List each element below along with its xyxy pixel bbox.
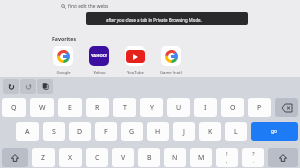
button[interactable]: H (147, 122, 169, 141)
button[interactable]: N (164, 148, 186, 167)
staticText: YouTube (127, 70, 144, 76)
staticText: Favorites (52, 35, 76, 42)
staticText: B (147, 153, 152, 163)
button[interactable]: L (225, 122, 247, 141)
staticText: go (271, 128, 278, 135)
staticText: Yahoo (93, 70, 106, 76)
staticText: ! (226, 150, 228, 158)
button[interactable]: O (221, 98, 244, 117)
button[interactable]: Undo (3, 79, 19, 94)
staticText: I (204, 103, 207, 113)
button[interactable]: Paste (37, 79, 53, 94)
button[interactable]: I (194, 98, 217, 117)
button[interactable]: go (251, 122, 298, 141)
staticText: S (52, 127, 56, 137)
staticText: N (172, 153, 178, 163)
staticText: K (208, 127, 213, 137)
button[interactable]: Q (2, 98, 26, 117)
staticText: R (95, 103, 100, 113)
staticText: X (68, 153, 73, 163)
staticText: V (121, 153, 126, 163)
staticText: Z (41, 153, 46, 163)
staticText: L (234, 127, 238, 137)
button[interactable]: X (59, 148, 82, 167)
staticText: YAHOO! (91, 53, 108, 59)
staticText: D (77, 127, 83, 137)
button[interactable]: U (167, 98, 190, 117)
button[interactable]: ? (242, 148, 264, 167)
button[interactable]: YouTube (125, 46, 145, 66)
staticText: H (155, 127, 161, 137)
staticText: U (176, 103, 182, 113)
button[interactable]: S (43, 122, 65, 141)
staticText: ? (252, 150, 255, 158)
button[interactable]: Shift (268, 148, 298, 167)
button[interactable]: Redo (20, 79, 36, 94)
staticText: . (253, 158, 255, 165)
staticText: C (95, 153, 100, 163)
staticText: O (230, 103, 236, 113)
button[interactable]: G (121, 122, 143, 141)
staticText: E (68, 103, 72, 113)
button[interactable]: Google (53, 46, 73, 66)
button[interactable]: Y (140, 98, 163, 117)
button[interactable]: D (69, 122, 91, 141)
button[interactable]: M (190, 148, 212, 167)
button[interactable]: F (95, 122, 117, 141)
staticText: after you close a tab in Private Browsin… (106, 17, 202, 23)
button[interactable]: K (199, 122, 221, 141)
button[interactable]: J (173, 122, 195, 141)
button[interactable]: after you close a tab in Private Browsin… (86, 12, 248, 25)
button[interactable]: R (86, 98, 109, 117)
staticText: J (183, 127, 185, 137)
button[interactable]: B (138, 148, 160, 167)
button[interactable]: Backspace (275, 98, 298, 117)
button[interactable]: first edit the webs (61, 1, 109, 11)
staticText: Y (150, 103, 154, 113)
staticText: Game (not) (160, 70, 182, 76)
button[interactable]: C (86, 148, 108, 167)
staticText: Google (56, 70, 71, 76)
button[interactable]: YAHOO! (89, 46, 109, 66)
staticText: M (198, 153, 205, 163)
button[interactable]: T (113, 98, 136, 117)
button[interactable]: W (30, 98, 54, 117)
staticText: , (226, 158, 228, 165)
staticText: T (123, 103, 127, 113)
staticText: Q (11, 103, 17, 113)
button[interactable]: Z (32, 148, 55, 167)
button[interactable]: Shift (2, 148, 28, 167)
staticText: F (104, 127, 108, 137)
staticText: A (25, 127, 30, 137)
staticText: P (257, 103, 262, 113)
button[interactable]: ! (216, 148, 238, 167)
button[interactable]: Game (not) (161, 46, 181, 66)
staticText: G (129, 127, 135, 137)
staticText: W (39, 103, 46, 113)
button[interactable]: E (58, 98, 82, 117)
button[interactable]: P (248, 98, 271, 117)
staticText: first edit the webs (68, 3, 109, 10)
button[interactable]: A (16, 122, 39, 141)
button[interactable]: V (112, 148, 134, 167)
